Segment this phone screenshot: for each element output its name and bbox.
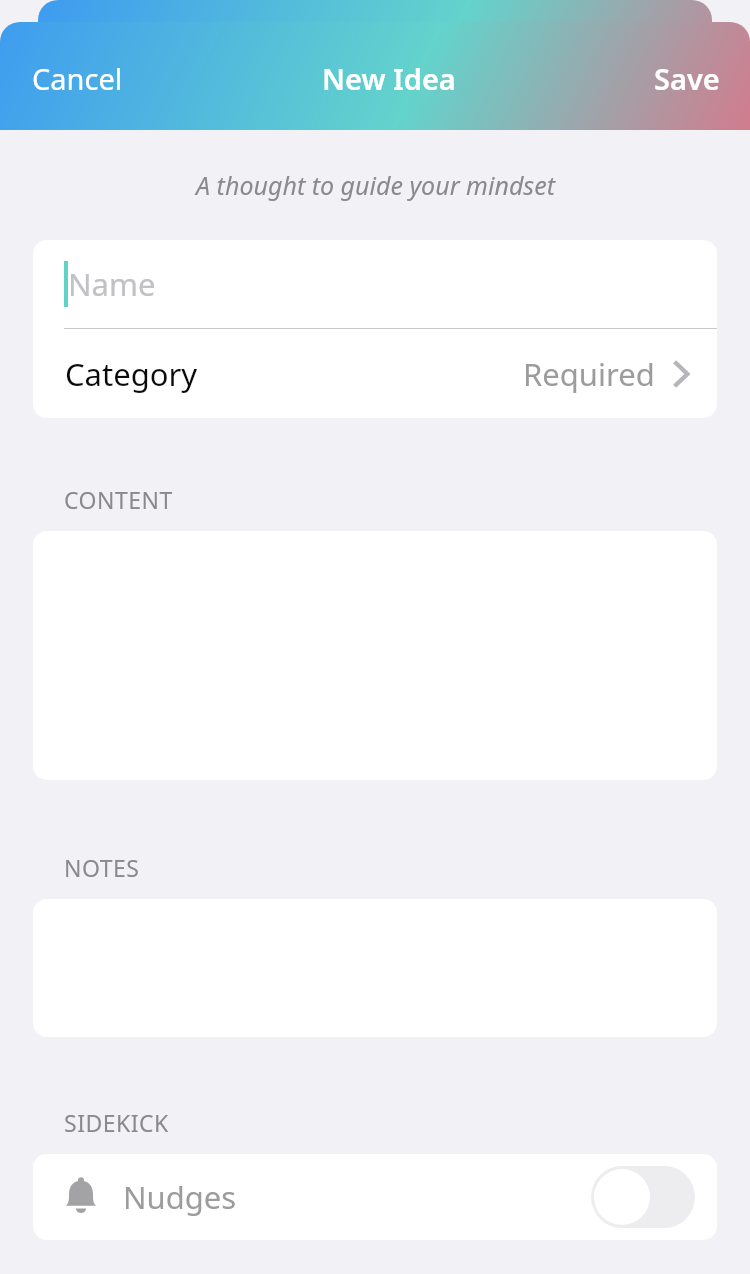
button[interactable]: Category bbox=[33, 329, 717, 418]
other: Nudges bbox=[61, 1175, 101, 1219]
other: Choose category bbox=[671, 357, 691, 391]
staticText: Name bbox=[68, 263, 156, 305]
staticText: Save bbox=[654, 59, 720, 98]
staticText: Required bbox=[523, 353, 655, 395]
staticText: Category bbox=[65, 353, 198, 395]
button[interactable]: Name bbox=[33, 240, 717, 328]
staticText: Nudges bbox=[123, 1176, 237, 1218]
staticText: NOTES bbox=[64, 852, 140, 883]
button[interactable]: Nudges bbox=[33, 1154, 717, 1240]
staticText: SIDEKICK bbox=[64, 1107, 169, 1138]
button[interactable]: Cancel bbox=[0, 53, 139, 104]
button[interactable]: Save bbox=[638, 53, 750, 104]
staticText: A thought to guide your mindset bbox=[196, 168, 555, 202]
staticText: Cancel bbox=[32, 59, 123, 98]
staticText: New Idea bbox=[322, 59, 456, 98]
staticText: CONTENT bbox=[64, 484, 173, 515]
button[interactable]: Nudges toggle, off bbox=[591, 1166, 695, 1228]
